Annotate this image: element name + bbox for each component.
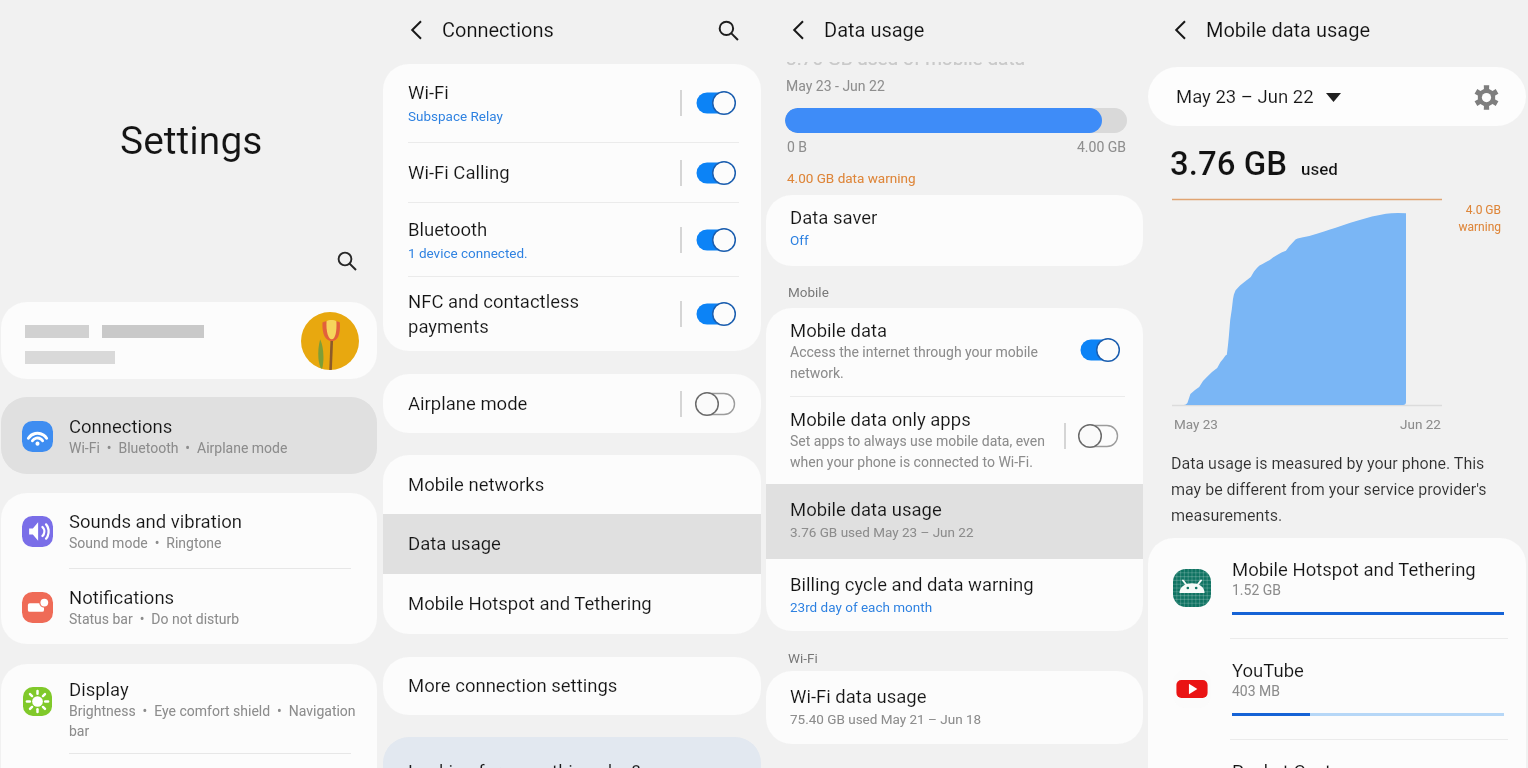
staticText: Connections xyxy=(442,18,554,41)
staticText: Wi-Fi Calling xyxy=(408,162,510,184)
button[interactable]: Looking for something else? xyxy=(383,737,761,768)
other: Toggle on xyxy=(696,301,736,327)
button[interactable]: Wi-Fi xyxy=(383,64,761,142)
staticText: 403 MB xyxy=(1232,683,1281,699)
staticText: Sound mode • Ringtone xyxy=(69,535,222,551)
staticText: 3.76 GB xyxy=(1170,144,1288,183)
staticText: Off xyxy=(790,232,809,248)
staticText: Mobile data usage xyxy=(1206,18,1370,41)
staticText: 23rd day of each month xyxy=(790,599,933,615)
other: Toggle off xyxy=(696,391,736,417)
staticText: Data usage xyxy=(408,533,501,555)
staticText: Looking for something else? xyxy=(408,761,641,768)
button[interactable]: Data saver xyxy=(766,195,1143,266)
button[interactable]: Wi-Fi Calling xyxy=(383,143,761,202)
staticText: Access the internet through your mobile … xyxy=(790,344,1042,381)
staticText: Data saver xyxy=(790,207,878,229)
staticText: 75.40 GB used May 21 – Jun 18 xyxy=(790,711,982,727)
staticText: 4.0 GB warning xyxy=(1431,203,1501,234)
staticText: used xyxy=(1301,159,1338,179)
staticText: Subspace Relay xyxy=(408,108,503,124)
button[interactable]: NFC and contactless payments xyxy=(383,277,761,351)
button[interactable]: Mobile Hotspot and Tethering xyxy=(1148,538,1526,638)
staticText: Status bar • Do not disturb xyxy=(69,611,240,627)
staticText: NFC and contactless payments xyxy=(408,291,624,337)
staticText: Data usage is measured by your phone. Th… xyxy=(1171,454,1489,524)
other: Toggle on xyxy=(696,90,736,116)
other: Toggle on xyxy=(696,160,736,186)
staticText: 1 device connected. xyxy=(408,245,528,261)
button[interactable]: Search xyxy=(328,242,366,280)
button[interactable]: Back xyxy=(1164,13,1198,47)
button[interactable]: Pocket Casts xyxy=(1148,740,1526,768)
staticText: Pocket Casts xyxy=(1232,761,1341,768)
button[interactable]: Bluetooth xyxy=(383,203,761,276)
staticText: May 23 xyxy=(1174,416,1218,432)
staticText: Mobile networks xyxy=(408,474,545,496)
staticText: Wi-Fi data usage xyxy=(790,686,927,708)
button[interactable]: Airplane mode xyxy=(383,374,761,433)
staticText: Notifications xyxy=(69,587,175,609)
staticText: More connection settings xyxy=(408,675,618,697)
staticText: 3.76 GB used May 23 – Jun 22 xyxy=(790,524,974,540)
staticText: 1.52 GB xyxy=(1232,582,1282,598)
staticText: Settings xyxy=(120,118,263,164)
button[interactable]: Settings xyxy=(1470,81,1502,113)
staticText: Wi-Fi • Bluetooth • Airplane mode xyxy=(69,440,288,456)
other: Toggle off xyxy=(1079,423,1119,449)
button[interactable]: Search xyxy=(709,11,747,49)
button[interactable]: Data usage xyxy=(383,514,761,574)
staticText: May 23 - Jun 22 xyxy=(786,78,885,94)
staticText: Set apps to always use mobile data, even… xyxy=(790,433,1048,470)
staticText: 3.76 GB used of mobile data xyxy=(786,47,1025,69)
button[interactable]: More connection settings xyxy=(383,657,761,715)
button[interactable]: Mobile data usage xyxy=(766,484,1143,559)
staticText: Mobile Hotspot and Tethering xyxy=(408,593,652,615)
other: Toggle on xyxy=(1080,337,1120,363)
button[interactable]: Mobile data xyxy=(766,308,1143,396)
button[interactable]: Back xyxy=(400,13,434,47)
staticText: Jun 22 xyxy=(1400,416,1441,432)
staticText: Wi-Fi xyxy=(408,82,449,104)
button[interactable]: Notifications xyxy=(1,569,377,644)
staticText: Connections xyxy=(69,416,173,438)
staticText: Sounds and vibration xyxy=(69,511,242,533)
button[interactable]: Back xyxy=(782,13,816,47)
staticText: 0 B xyxy=(787,139,808,155)
button[interactable]: Display xyxy=(1,664,377,753)
staticText: Brightness • Eye comfort shield • Naviga… xyxy=(69,703,359,739)
button[interactable]: Mobile networks xyxy=(383,455,761,514)
staticText: Mobile Hotspot and Tethering xyxy=(1232,559,1476,581)
staticText: Bluetooth xyxy=(408,219,488,241)
staticText: 4.00 GB xyxy=(1077,139,1127,155)
staticText: Billing cycle and data warning xyxy=(790,574,1034,596)
button[interactable]: Mobile data only apps xyxy=(766,397,1143,484)
staticText: Display xyxy=(69,679,129,701)
staticText: Wi-Fi xyxy=(788,650,818,666)
staticText: May 23 – Jun 22 xyxy=(1176,86,1314,108)
staticText: 4.00 GB data warning xyxy=(787,170,916,186)
button[interactable]: Billing cycle and data warning xyxy=(766,559,1143,631)
button[interactable]: Mobile Hotspot and Tethering xyxy=(383,574,761,634)
button[interactable] xyxy=(1,302,377,379)
staticText: Mobile xyxy=(788,284,829,300)
button[interactable]: Sounds and vibration xyxy=(1,493,377,568)
button[interactable]: Wi-Fi data usage xyxy=(766,671,1143,744)
button[interactable]: Connections xyxy=(1,397,377,474)
staticText: Airplane mode xyxy=(408,393,528,415)
staticText: Data usage xyxy=(824,18,925,41)
button[interactable]: May 23 – Jun 22 xyxy=(1168,80,1349,114)
other: Toggle on xyxy=(696,227,736,253)
staticText: Mobile data xyxy=(790,320,888,342)
staticText: Mobile data only apps xyxy=(790,409,971,431)
staticText: YouTube xyxy=(1232,660,1304,682)
staticText: Mobile data usage xyxy=(790,499,942,521)
button[interactable]: YouTube xyxy=(1148,639,1526,739)
